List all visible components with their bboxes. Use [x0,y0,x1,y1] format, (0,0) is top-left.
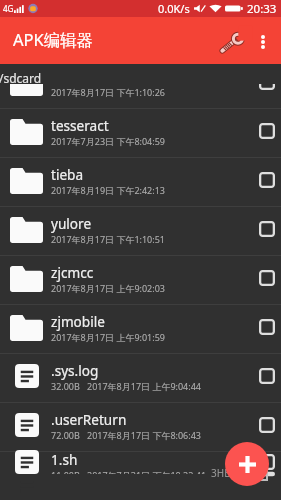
staticText: 2017年8月17日 上午9:04:44 [87,380,201,392]
button[interactable]: Add [225,442,269,486]
staticText: 3HE [211,466,230,480]
staticText: .userReturn [51,410,127,429]
button[interactable]: Select .sys.log [245,360,281,396]
button[interactable]: More options [248,26,278,56]
button[interactable]: Tools [214,24,248,58]
button[interactable]: Select .userReturn [245,409,281,445]
staticText: APK编辑器 [13,28,94,51]
button[interactable]: Select tieba [245,164,281,200]
staticText: 72.00B [51,429,80,441]
staticText: 4G [3,3,14,14]
staticText: 2017年7月23日 下午8:04:59 [51,135,165,147]
staticText: .sys.log [51,361,99,380]
staticText: 2017年8月17日 上午9:02:03 [51,282,165,294]
button[interactable]: .userReturn [0,403,281,451]
staticText: 11.00B [51,469,80,474]
button[interactable]: yulore [0,207,281,255]
staticText: 2017年7月31日 下午10:22:41 [87,469,207,474]
button[interactable]: tieba [0,158,281,206]
staticText: 2017年8月17日 下午8:06:43 [87,429,201,441]
button[interactable]: Select yulore [245,213,281,249]
staticText: 2017年8月17日 上午9:01:59 [51,331,165,343]
staticText: 32.00B [51,380,80,392]
staticText: 2017年8月19日 下午2:42:13 [51,184,165,196]
button[interactable]: zjcmcc [0,256,281,304]
button[interactable]: tesseract [0,109,281,157]
button[interactable]: zjmobile [0,305,281,353]
staticText: zjmobile [51,312,105,331]
button[interactable]: Select zjcmcc [245,262,281,298]
staticText: 2017年8月17日 下午1:10:51 [51,233,165,245]
button[interactable]: .sys.log [0,354,281,402]
staticText: tieba [51,165,84,184]
staticText: 2017年8月17日 下午1:10:26 [51,86,165,98]
button[interactable]: 1.sh [0,452,281,476]
staticText: 0.0K/s [158,1,190,16]
staticText: 当游网 [233,467,260,478]
staticText: 20:33 [247,1,277,17]
button[interactable]: Select tesseract [245,115,281,151]
button[interactable]: Select 1.sh [245,452,281,476]
button[interactable]: 2017年8月17日 下午1:10:26 [0,84,281,108]
button[interactable]: Select zjmobile [245,311,281,347]
staticText: tesseract [51,116,109,135]
staticText: yulore [51,214,92,233]
staticText: /sdcard [0,70,42,86]
button[interactable]: Select [245,84,281,102]
staticText: 1.sh [51,450,78,469]
staticText: zjcmcc [51,263,94,282]
